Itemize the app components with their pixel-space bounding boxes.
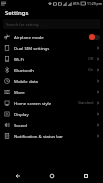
button[interactable]: Airplane mode	[0, 31, 103, 42]
staticText: Off	[88, 56, 94, 61]
staticText: Search for setting...	[6, 22, 42, 27]
button[interactable]: Wi-Fi	[0, 53, 103, 64]
staticText: Settings	[5, 9, 29, 17]
staticText: Airplane mode	[14, 34, 89, 40]
staticText: Bluetooth	[14, 67, 88, 73]
staticText: More	[14, 89, 96, 95]
button[interactable]: Mobile data	[0, 75, 103, 86]
staticText: Standard	[78, 100, 94, 105]
staticText: Home screen style	[14, 100, 78, 106]
staticText: Display	[14, 111, 96, 117]
button[interactable]: Recent apps	[69, 168, 103, 183]
staticText: Dual SIM settings	[14, 45, 96, 51]
button[interactable]: Search for setting...	[3, 19, 100, 29]
staticText: Wi-Fi	[14, 56, 88, 62]
staticText: Mobile data	[14, 78, 96, 84]
button[interactable]: Display	[0, 108, 103, 119]
staticText: 11:29 pm	[87, 1, 102, 6]
button[interactable]: Home screen style	[0, 97, 103, 108]
button[interactable]: Sound	[0, 119, 103, 130]
button[interactable]: Bluetooth	[0, 64, 103, 75]
staticText: Notification & status bar	[14, 133, 96, 139]
button[interactable]: Dual SIM settings	[0, 42, 103, 53]
button[interactable]: Notification & status bar	[0, 130, 103, 141]
button[interactable]: Back	[0, 168, 35, 183]
staticText: 85%	[73, 2, 80, 6]
button[interactable]: More	[0, 86, 103, 97]
button[interactable]: Airplane mode toggle	[89, 34, 100, 40]
button[interactable]: Home	[35, 168, 69, 183]
staticText: On	[88, 67, 94, 72]
staticText: Sound	[14, 122, 96, 128]
